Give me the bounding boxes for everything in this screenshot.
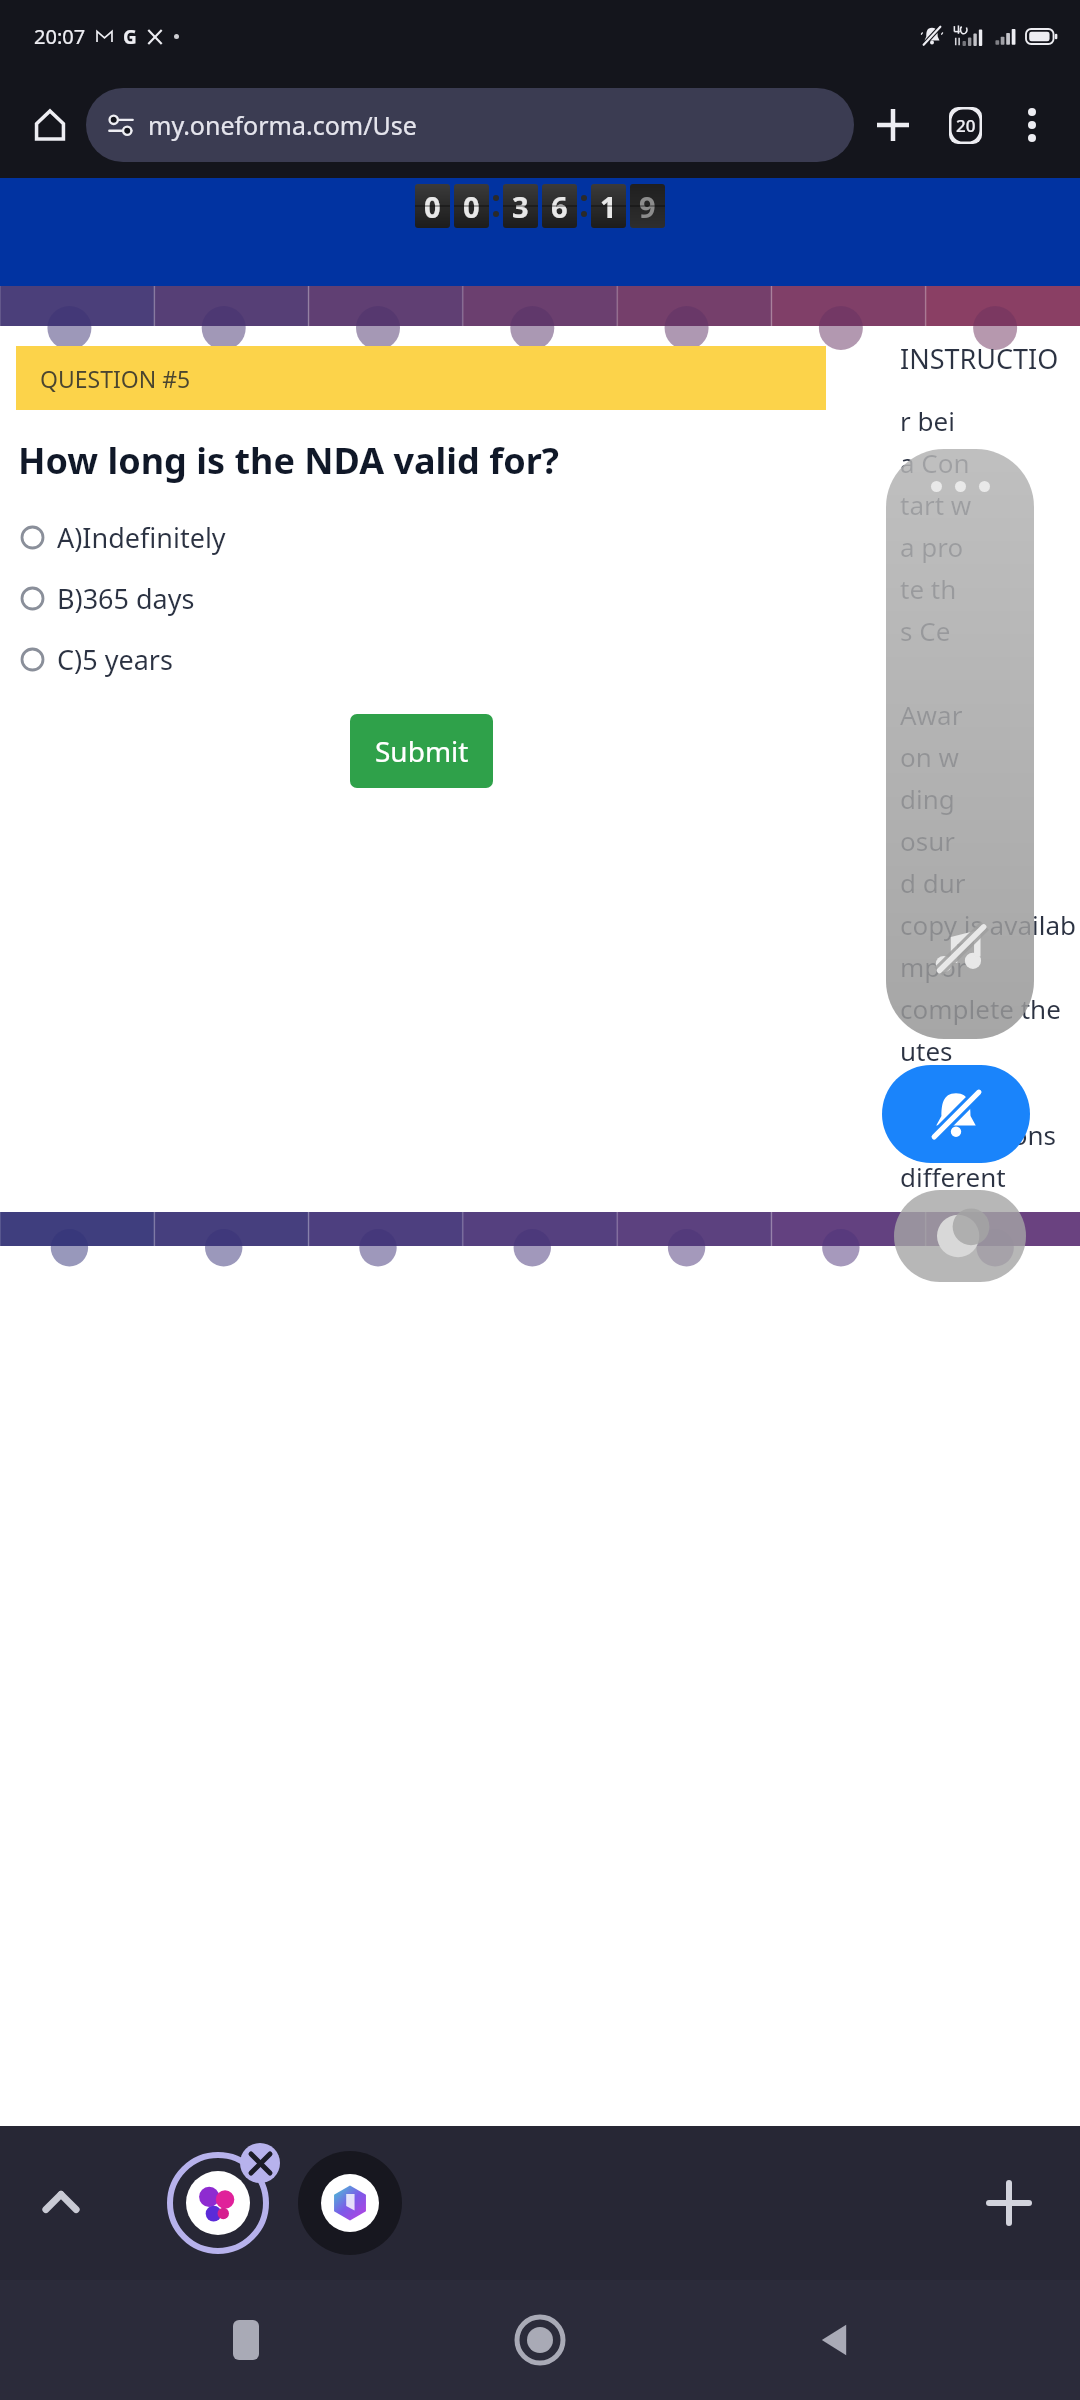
button[interactable]: C)5 years [0,637,1080,682]
button[interactable]: Home [18,93,82,157]
staticText: mpor [900,949,967,984]
staticText: 0 [463,187,480,226]
staticText: Submit [375,732,469,770]
staticText: utes [900,1033,953,1068]
staticText: a Con [900,445,970,480]
staticText: INSTRUCTIO [900,340,1059,377]
button[interactable]: Expand [26,2168,96,2238]
staticText: 20:07 [34,23,86,50]
staticText: my.oneforma.com/Use [148,108,417,142]
staticText: How long is the NDA valid for? [18,436,559,485]
staticText: tart w [900,487,972,522]
button[interactable]: Floating assistant panel [886,449,1034,1039]
staticText: d dur [900,865,966,900]
button[interactable]: Add app [974,2168,1044,2238]
staticText: 1 [600,187,617,226]
staticText: 6 [551,187,568,226]
staticText: 0 [424,187,441,226]
button[interactable]: A)Indefinitely [0,515,1080,560]
staticText: A)Indefinitely [57,519,226,556]
staticText: complete the [900,991,1061,1026]
staticText: on w [900,739,959,774]
staticText: 9 [639,187,656,226]
staticText: copy is availab [900,907,1076,942]
staticText: The certificatio [900,1075,1080,1110]
staticText: ding [900,781,955,816]
staticText: r bei [900,403,955,438]
button[interactable]: Home [492,2292,588,2388]
button[interactable]: B)365 days [0,576,1080,621]
staticText: C)5 years [57,641,173,678]
staticText: 15 questions [900,1117,1057,1152]
button[interactable]: my.oneforma.com/Use [86,88,854,162]
button[interactable]: Back [786,2292,882,2388]
button[interactable]: Do not disturb [894,1190,1026,1282]
staticText: a pro [900,529,964,564]
button[interactable]: More options [1002,95,1062,155]
staticText: osur [900,823,955,858]
button[interactable]: Recent apps [198,2292,294,2388]
staticText: different article [900,1159,1080,1194]
button[interactable]: Tabs, 20 open [934,94,996,156]
staticText: G [123,24,137,50]
staticText: 20 [956,114,976,137]
button[interactable]: Silent mode [882,1065,1030,1163]
staticText: Awar [900,697,963,732]
button[interactable]: Submit [350,714,493,788]
button[interactable]: New tab [862,94,924,156]
staticText: QUESTION #5 [40,363,191,394]
button[interactable]: Close app [240,2143,280,2183]
button[interactable]: Oneforma app [160,2145,276,2261]
staticText: B)365 days [57,580,195,617]
staticText: te th [900,571,957,606]
staticText: 3 [512,187,529,226]
staticText: s Ce [900,613,951,648]
button[interactable]: Second app [298,2151,402,2255]
